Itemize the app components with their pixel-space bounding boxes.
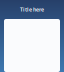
staticText: Title here [20, 6, 44, 13]
